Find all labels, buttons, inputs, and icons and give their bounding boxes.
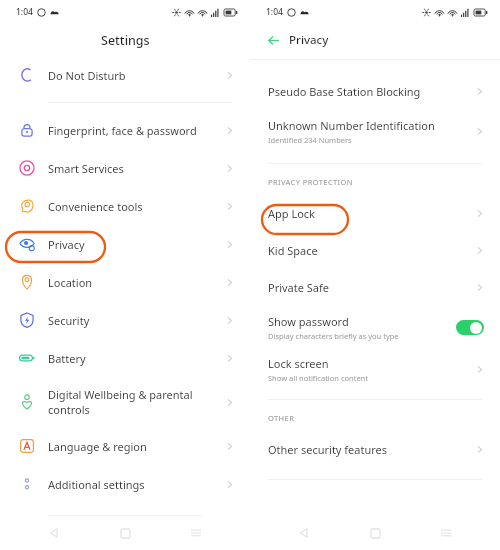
staticText: Unknown Number Identification — [268, 118, 435, 133]
button[interactable]: Language & region — [0, 427, 250, 465]
button[interactable]: Security — [0, 301, 250, 339]
button[interactable]: Show password — [250, 306, 500, 348]
button[interactable]: Recents — [179, 516, 213, 550]
staticText: Show all notification content — [268, 373, 368, 383]
staticText: Digital Wellbeing & parental controls — [48, 387, 223, 417]
button[interactable]: Location — [0, 263, 250, 301]
button[interactable]: App Lock — [250, 195, 500, 232]
staticText: Other security features — [268, 442, 388, 457]
button[interactable]: Other security features — [250, 431, 500, 468]
staticText: Kid Space — [268, 243, 318, 258]
staticText: 1:04 — [266, 6, 283, 18]
button[interactable]: Back — [262, 29, 284, 51]
staticText: Private Safe — [268, 280, 330, 295]
staticText: PRIVACY PROTECTION — [268, 177, 353, 187]
staticText: Privacy — [48, 237, 223, 252]
button[interactable]: Show password toggle — [456, 320, 484, 335]
button[interactable]: Home — [358, 516, 392, 550]
button[interactable]: Pseudo Base Station Blocking — [250, 73, 500, 110]
button[interactable]: Back — [287, 516, 321, 550]
staticText: Convenience tools — [48, 199, 223, 214]
staticText: OTHER — [268, 413, 295, 423]
staticText: Battery — [48, 351, 223, 366]
button[interactable]: Kid Space — [250, 232, 500, 269]
button[interactable]: Additional settings — [0, 465, 250, 503]
button[interactable]: Do Not Disturb — [0, 56, 250, 94]
button[interactable]: Home — [108, 516, 142, 550]
staticText: Location — [48, 275, 223, 290]
staticText: Fingerprint, face & password — [48, 123, 223, 138]
button[interactable]: Digital Wellbeing & parental controls — [0, 377, 250, 427]
staticText: Identified 234 Numbers — [268, 135, 352, 145]
staticText: Do Not Disturb — [48, 68, 223, 83]
button[interactable]: Smart Services — [0, 149, 250, 187]
staticText: 1:04 — [16, 6, 33, 18]
staticText: Pseudo Base Station Blocking — [268, 84, 421, 99]
button[interactable]: Battery — [0, 339, 250, 377]
button[interactable]: Privacy — [0, 225, 250, 263]
button[interactable]: Fingerprint, face & password — [0, 111, 250, 149]
staticText: App Lock — [268, 206, 315, 221]
button[interactable]: Unknown Number Identification — [250, 110, 500, 152]
staticText: Display characters briefly as you type — [268, 331, 399, 341]
button[interactable]: Lock screen — [250, 348, 500, 390]
staticText: Language & region — [48, 439, 223, 454]
button[interactable]: Back — [37, 516, 71, 550]
staticText: Show password — [268, 314, 349, 329]
staticText: Smart Services — [48, 161, 223, 176]
button[interactable]: Convenience tools — [0, 187, 250, 225]
staticText: Settings — [101, 32, 150, 49]
staticText: Lock screen — [268, 356, 329, 371]
button[interactable]: Private Safe — [250, 269, 500, 306]
staticText: Privacy — [289, 32, 329, 48]
staticText: Additional settings — [48, 477, 223, 492]
staticText: Security — [48, 313, 223, 328]
button[interactable]: Recents — [429, 516, 463, 550]
